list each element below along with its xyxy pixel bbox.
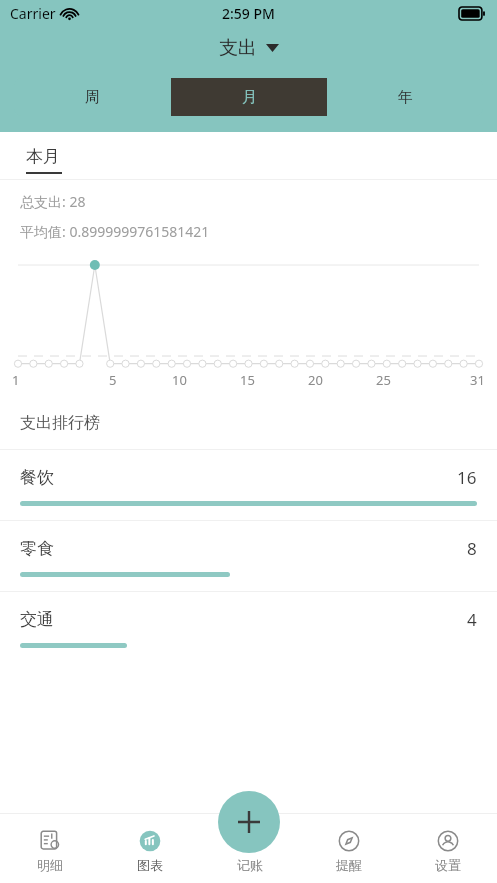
staticText: 15	[240, 371, 255, 389]
staticText: 1	[12, 371, 20, 389]
button[interactable]: 图表	[100, 813, 200, 883]
button[interactable]: 支出	[205, 30, 293, 66]
button[interactable]: 交通	[0, 592, 497, 662]
button[interactable]: 本月	[26, 146, 62, 174]
staticText: 总支出: 28	[20, 192, 86, 211]
staticText: 5	[109, 371, 117, 389]
staticText: 年	[398, 88, 413, 107]
button[interactable]: 月	[171, 78, 327, 116]
button[interactable]: 年	[327, 78, 483, 116]
staticText: 设置	[435, 857, 461, 873]
staticText: 零食	[20, 538, 54, 559]
button[interactable]: 明细	[0, 813, 100, 883]
staticText: 25	[376, 371, 391, 389]
staticText: Carrier	[10, 4, 56, 23]
button[interactable]: 餐饮	[0, 450, 497, 520]
staticText: 8	[467, 537, 477, 560]
staticText: 周	[85, 88, 100, 107]
staticText: 20	[308, 371, 323, 389]
button[interactable]: 周	[14, 78, 171, 116]
staticText: 交通	[20, 609, 54, 630]
staticText: 图表	[137, 857, 163, 873]
staticText: 支出排行榜	[20, 413, 100, 433]
staticText: 餐饮	[20, 467, 54, 488]
staticText: 本月	[26, 146, 60, 167]
staticText: 31	[470, 371, 485, 389]
button[interactable]: 记账	[200, 813, 299, 883]
staticText: 10	[172, 371, 187, 389]
staticText: 支出	[219, 36, 257, 60]
button[interactable]: 零食	[0, 521, 497, 591]
staticText: 4	[467, 608, 477, 631]
staticText: 月	[242, 88, 257, 107]
staticText: 2:59 PM	[222, 4, 275, 23]
staticText: 记账	[237, 857, 263, 873]
button[interactable]: 添加记账	[218, 791, 280, 853]
button[interactable]: 设置	[398, 813, 497, 883]
staticText: 平均值: 0.8999999761581421	[20, 222, 210, 241]
staticText: 明细	[37, 857, 63, 873]
button[interactable]: 提醒	[299, 813, 398, 883]
staticText: 提醒	[336, 857, 362, 873]
staticText: 16	[457, 466, 477, 489]
